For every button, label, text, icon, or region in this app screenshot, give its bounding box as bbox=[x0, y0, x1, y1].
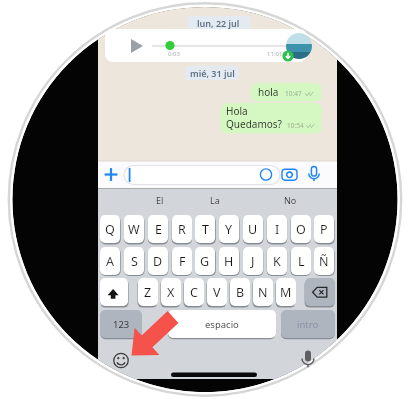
button[interactable]: K bbox=[267, 247, 287, 275]
button[interactable]: Z bbox=[138, 278, 158, 306]
button[interactable]: Y bbox=[219, 215, 239, 243]
button[interactable]: O bbox=[291, 215, 311, 243]
button[interactable]: Ñ bbox=[314, 247, 334, 275]
staticText: B bbox=[236, 284, 245, 301]
staticText: U bbox=[248, 221, 258, 238]
button[interactable]: H bbox=[219, 247, 239, 275]
button[interactable]: X bbox=[161, 278, 181, 306]
button[interactable]: A bbox=[100, 247, 120, 275]
staticText: No bbox=[284, 194, 297, 206]
staticText: hola bbox=[258, 85, 279, 99]
staticText: E bbox=[155, 221, 162, 238]
staticText: mié, 31 jul bbox=[190, 67, 235, 79]
staticText: La bbox=[210, 194, 220, 206]
staticText: C bbox=[190, 284, 198, 301]
staticText: Z bbox=[144, 284, 152, 301]
staticText: D bbox=[153, 253, 163, 270]
staticText: J bbox=[251, 253, 255, 270]
button[interactable]: N bbox=[253, 278, 273, 306]
staticText: El bbox=[156, 194, 164, 206]
button[interactable]: 123 bbox=[100, 310, 142, 338]
staticText: K bbox=[273, 253, 281, 270]
button[interactable]: T bbox=[195, 215, 215, 243]
button[interactable]: J bbox=[243, 247, 263, 275]
button[interactable]: S bbox=[124, 247, 144, 275]
staticText: 10:47 bbox=[285, 89, 302, 98]
staticText: P bbox=[320, 221, 328, 238]
staticText: Q bbox=[105, 221, 115, 238]
button[interactable]: D bbox=[148, 247, 168, 275]
button[interactable]: M bbox=[276, 278, 296, 306]
button[interactable] bbox=[100, 278, 128, 306]
button[interactable]: espacio bbox=[168, 310, 276, 338]
staticText: I bbox=[275, 221, 280, 238]
staticText: H bbox=[224, 253, 234, 270]
staticText: L bbox=[298, 253, 305, 270]
staticText: V bbox=[213, 284, 221, 301]
staticText: W bbox=[128, 221, 140, 238]
button[interactable]: B bbox=[230, 278, 250, 306]
staticText: 123 bbox=[113, 318, 130, 331]
button[interactable]: E bbox=[148, 215, 168, 243]
staticText: G bbox=[200, 253, 210, 270]
staticText: 10:54 bbox=[287, 121, 304, 130]
staticText: 0:03 bbox=[168, 50, 180, 58]
button[interactable]: C bbox=[184, 278, 204, 306]
staticText: lun, 22 jul bbox=[197, 17, 240, 29]
button[interactable]: V bbox=[207, 278, 227, 306]
button[interactable]: U bbox=[243, 215, 263, 243]
staticText: M bbox=[280, 284, 292, 301]
staticText: Ñ bbox=[319, 253, 329, 270]
button[interactable]: F bbox=[172, 247, 192, 275]
button[interactable]: L bbox=[291, 247, 311, 275]
staticText: intro bbox=[297, 318, 319, 331]
staticText: S bbox=[131, 253, 138, 270]
staticText: R bbox=[178, 221, 186, 238]
button[interactable] bbox=[305, 278, 335, 306]
staticText: F bbox=[179, 253, 186, 270]
staticText: N bbox=[258, 284, 268, 301]
staticText: X bbox=[167, 284, 175, 301]
button[interactable]: G bbox=[195, 247, 215, 275]
button[interactable]: R bbox=[172, 215, 192, 243]
staticText: Y bbox=[225, 221, 233, 238]
staticText: espacio bbox=[205, 318, 239, 331]
staticText: 11:01 bbox=[267, 50, 283, 58]
staticText: T bbox=[202, 221, 209, 238]
button[interactable]: intro bbox=[281, 310, 335, 338]
staticText: Hola bbox=[226, 104, 248, 118]
button[interactable]: P bbox=[314, 215, 334, 243]
staticText: A bbox=[106, 253, 114, 270]
button[interactable]: I bbox=[267, 215, 287, 243]
button[interactable]: W bbox=[124, 215, 144, 243]
staticText: O bbox=[296, 221, 306, 238]
staticText: Quedamos? bbox=[226, 117, 282, 131]
button[interactable]: Q bbox=[100, 215, 120, 243]
